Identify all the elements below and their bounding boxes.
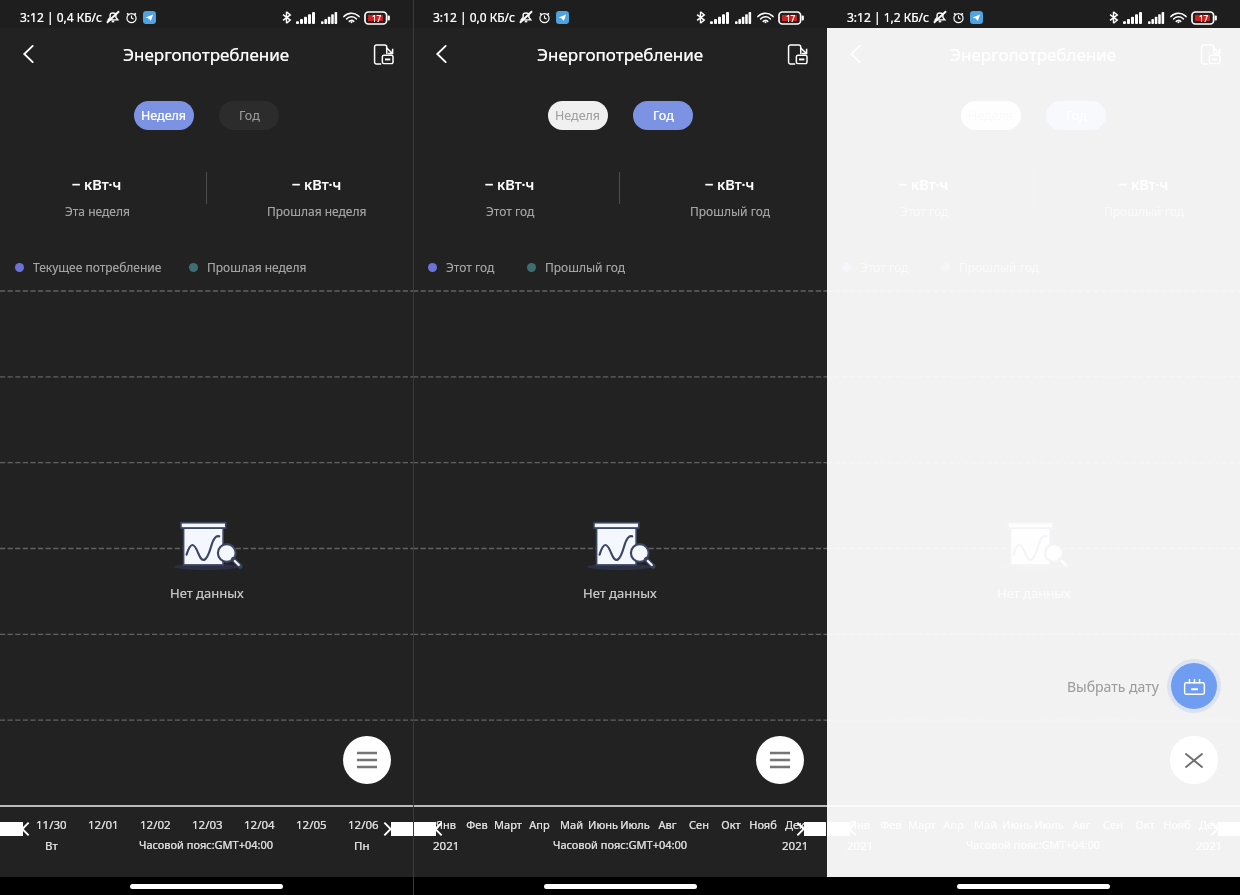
staticText: Часовой пояс:GMT+04:00 — [553, 837, 688, 852]
staticText: 2021 — [782, 838, 809, 854]
staticText: 2021 — [433, 838, 460, 854]
staticText: 17 — [372, 13, 382, 24]
staticText: Март — [908, 817, 936, 832]
button[interactable]: Меню — [343, 736, 391, 784]
button[interactable]: Экспорт — [779, 36, 815, 72]
staticText: Окт — [1135, 817, 1155, 832]
button[interactable]: Год — [1046, 101, 1106, 130]
staticText: Май — [974, 817, 997, 832]
staticText: Июль — [620, 817, 650, 832]
staticText: Дек — [1199, 817, 1219, 832]
staticText: Фев — [466, 817, 488, 832]
staticText: Этот год — [486, 203, 535, 219]
button[interactable]: Неделя — [134, 101, 194, 130]
staticText: Апр — [529, 817, 550, 832]
staticText: 12/05 — [296, 817, 327, 833]
staticText: Июнь — [1002, 817, 1032, 832]
staticText: ‒ кВт·ч — [899, 174, 949, 194]
staticText: 17 — [1199, 13, 1209, 24]
button[interactable]: Закрыть — [1170, 736, 1218, 784]
button[interactable]: Выбрать дату — [1171, 663, 1217, 709]
staticText: Вт — [45, 838, 58, 854]
staticText: ‒ кВт·ч — [485, 174, 535, 194]
staticText: 12/03 — [192, 817, 223, 833]
staticText: Нояб — [1163, 817, 1191, 832]
staticText: 17 — [786, 13, 796, 24]
button[interactable]: Меню — [756, 736, 804, 784]
staticText: Часовой пояс:GMT+04:00 — [966, 837, 1101, 852]
staticText: ‒ кВт·ч — [705, 174, 755, 194]
button[interactable]: Экспорт — [365, 36, 401, 72]
staticText: Энергопотребление — [123, 43, 290, 66]
staticText: Год — [239, 107, 260, 124]
staticText: Пн — [354, 838, 370, 854]
staticText: Нет данных — [170, 584, 244, 602]
button[interactable]: Год — [633, 101, 693, 130]
staticText: Прошлый год — [545, 259, 626, 275]
staticText: Год — [653, 107, 674, 124]
staticText: Эта неделя — [65, 203, 130, 219]
staticText: Текущее потребление — [33, 259, 162, 275]
staticText: Авг — [1072, 817, 1091, 832]
staticText: Сен — [689, 817, 709, 832]
staticText: Май — [560, 817, 583, 832]
staticText: 2021 — [847, 838, 874, 854]
staticText: Нет данных — [997, 584, 1071, 602]
staticText: Этот год — [446, 259, 495, 275]
staticText: Неделя — [555, 107, 601, 124]
button[interactable]: Год — [219, 101, 279, 130]
button[interactable]: Назад — [421, 34, 461, 74]
staticText: Прошлый год — [690, 203, 771, 219]
staticText: Апр — [943, 817, 964, 832]
staticText: Неделя — [141, 107, 187, 124]
staticText: ‒ кВт·ч — [72, 174, 122, 194]
button[interactable]: Меню — [1170, 736, 1218, 784]
staticText: Энергопотребление — [950, 43, 1117, 66]
staticText: 11/30 — [36, 817, 67, 833]
staticText: Нет данных — [583, 584, 657, 602]
staticText: Янв — [436, 817, 456, 832]
staticText: Дек — [785, 817, 805, 832]
staticText: Прошлая неделя — [267, 203, 367, 219]
staticText: 12/02 — [140, 817, 171, 833]
staticText: Часовой пояс:GMT+04:00 — [139, 837, 274, 852]
button[interactable]: Экспорт — [1192, 36, 1228, 72]
button[interactable]: Неделя — [961, 101, 1021, 130]
staticText: Март — [494, 817, 522, 832]
staticText: Прошлая неделя — [207, 259, 307, 275]
staticText: Июль — [1034, 817, 1064, 832]
staticText: Нояб — [749, 817, 777, 832]
staticText: Энергопотребление — [537, 43, 704, 66]
staticText: 12/04 — [244, 817, 275, 833]
staticText: Выбрать дату — [1067, 677, 1159, 696]
staticText: ‒ кВт·ч — [292, 174, 342, 194]
staticText: Июнь — [588, 817, 618, 832]
staticText: Авг — [658, 817, 677, 832]
button[interactable]: Неделя — [548, 101, 608, 130]
staticText: 12/01 — [88, 817, 119, 833]
staticText: Окт — [721, 817, 741, 832]
staticText: Янв — [850, 817, 870, 832]
staticText: Сен — [1103, 817, 1123, 832]
staticText: Фев — [880, 817, 902, 832]
staticText: 3:12 | 0,4 КБ/с — [20, 9, 102, 25]
staticText: ‒ кВт·ч — [1119, 174, 1169, 194]
button[interactable]: Назад — [8, 34, 48, 74]
staticText: 3:12 | 1,2 КБ/с — [847, 9, 929, 25]
staticText: 3:12 | 0,0 КБ/с — [433, 9, 515, 25]
staticText: 12/06 — [348, 817, 379, 833]
staticText: 2021 — [1196, 838, 1223, 854]
